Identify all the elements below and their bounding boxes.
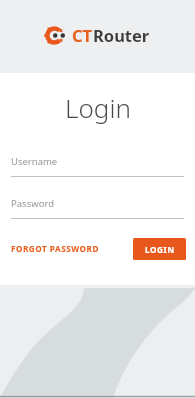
staticText: Router — [93, 24, 150, 46]
button[interactable]: Username — [0, 155, 195, 177]
staticText: Login — [65, 90, 131, 125]
staticText: CT — [72, 24, 93, 46]
staticText: FORGOT PASSWORD — [11, 243, 99, 254]
staticText: LOGIN — [145, 244, 175, 255]
button[interactable]: Password — [0, 197, 195, 219]
staticText: Password — [11, 197, 54, 210]
button[interactable]: LOGIN — [133, 238, 186, 260]
staticText: Username — [11, 155, 58, 168]
other: CTRouter logo — [46, 25, 67, 46]
button[interactable]: FORGOT PASSWORD — [11, 237, 99, 260]
